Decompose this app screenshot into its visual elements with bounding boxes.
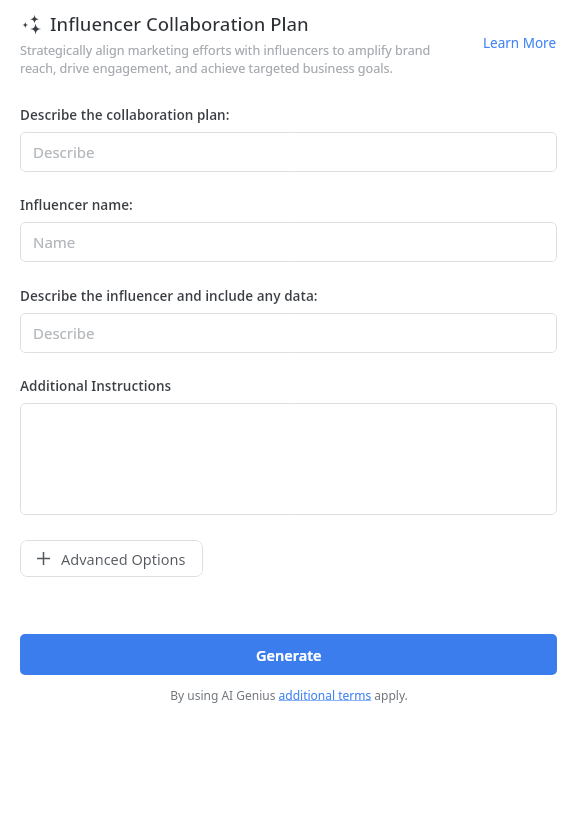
staticText: Describe the influencer and include any … [20,287,318,305]
button[interactable]: Name [20,222,557,262]
staticText: By using AI Genius additional terms appl… [170,687,408,703]
button[interactable]: Generate [20,634,557,675]
other: AI sparkle [20,13,42,35]
staticText: Name [33,232,76,252]
button[interactable]: Describe [20,132,557,172]
button[interactable] [20,403,557,515]
staticText: Additional Instructions [20,377,172,395]
staticText: Influencer Collaboration Plan [50,11,309,36]
button[interactable]: Advanced Options [20,540,203,577]
staticText: Strategically align marketing efforts wi… [20,42,454,77]
staticText: Influencer name: [20,196,133,214]
staticText: Describe [33,142,95,162]
button[interactable]: Describe [20,313,557,353]
staticText: Describe the collaboration plan: [20,106,230,124]
staticText: Generate [256,645,322,665]
button[interactable]: Learn More [483,34,557,52]
staticText: Learn More [483,34,557,52]
staticText: Describe [33,323,95,343]
staticText: Advanced Options [61,549,186,569]
